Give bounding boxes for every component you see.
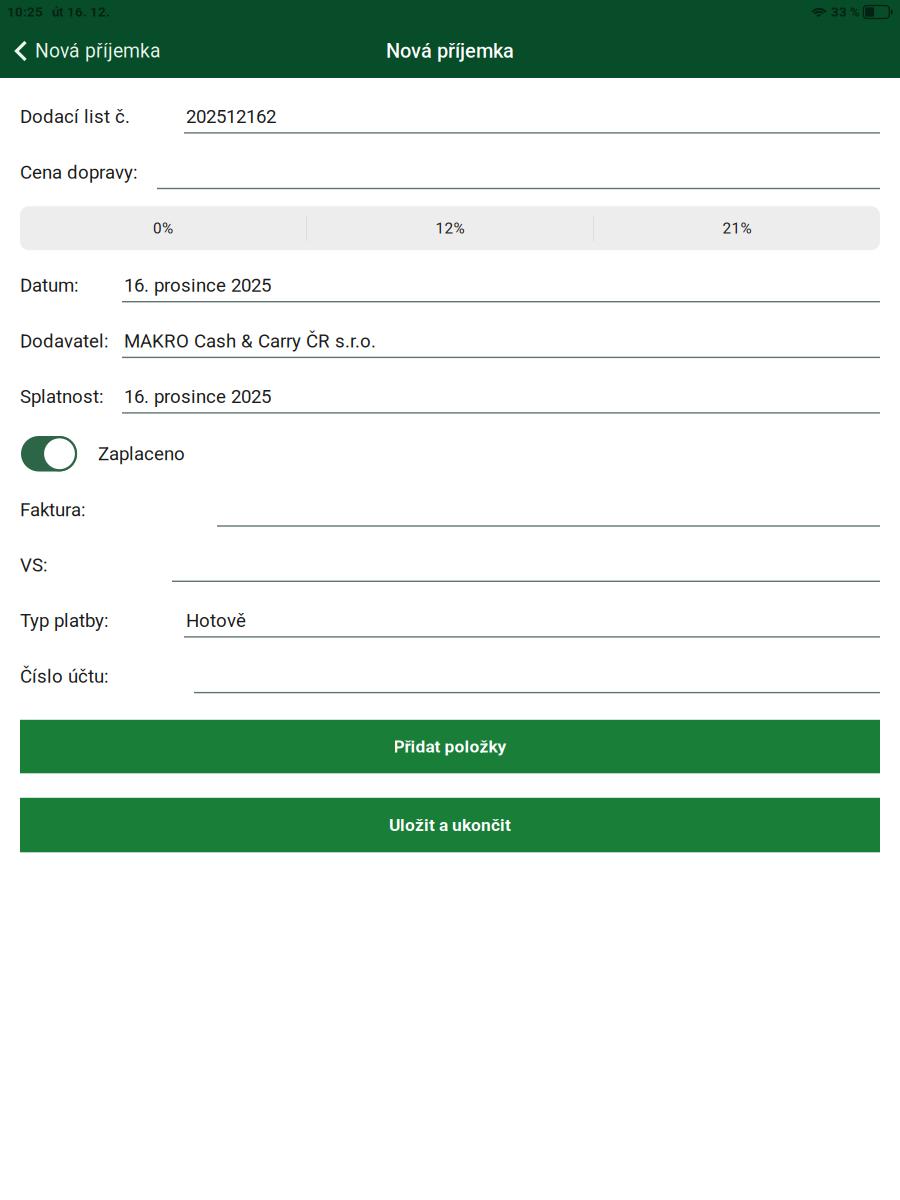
staticText: Dodací list č.	[20, 106, 130, 128]
staticText: MAKRO Cash & Carry ČR s.r.o.	[124, 330, 376, 352]
staticText: 16. prosince 2025	[124, 274, 271, 296]
staticText: Hotově	[186, 610, 246, 632]
staticText: Datum:	[20, 274, 79, 296]
staticText: 10:25	[7, 4, 43, 20]
staticText: 21%	[722, 219, 751, 237]
staticText: Dodavatel:	[20, 330, 109, 352]
staticText: 16. prosince 2025	[124, 386, 271, 408]
staticText: Přidat položky	[393, 736, 506, 757]
staticText: 0%	[153, 219, 173, 237]
staticText: Nová příjemka	[386, 39, 514, 63]
staticText: Číslo účtu:	[20, 665, 109, 687]
staticText: Nová příjemka	[35, 40, 161, 62]
staticText: 202512162	[186, 106, 276, 128]
button[interactable]: 21%	[594, 206, 880, 250]
staticText: Uložit a ukončit	[389, 815, 511, 835]
button[interactable]: Přidat položky	[20, 720, 880, 773]
button[interactable]: 0%	[20, 206, 306, 250]
staticText: Typ platby:	[20, 610, 109, 632]
button[interactable]: Uložit a ukončit	[20, 798, 880, 852]
staticText: Splatnost:	[20, 386, 104, 408]
button[interactable]: Nová příjemka	[0, 24, 175, 78]
staticText: 33 %	[828, 4, 863, 20]
button[interactable]: 12%	[307, 206, 593, 250]
staticText: Cena dopravy:	[20, 161, 138, 183]
staticText: út 16. 12.	[43, 4, 110, 20]
staticText: Zaplaceno	[98, 443, 185, 465]
staticText: VS:	[20, 554, 48, 576]
staticText: Faktura:	[20, 499, 86, 521]
button[interactable]: Zaplaceno	[21, 436, 77, 471]
staticText: 12%	[435, 219, 464, 237]
